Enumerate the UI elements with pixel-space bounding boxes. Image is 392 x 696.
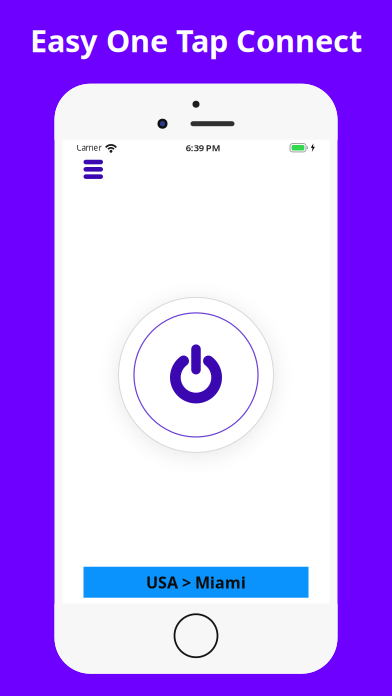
button[interactable]: USA > Miami [83,567,308,598]
staticText: Carrier [76,142,101,153]
staticText: Easy One Tap Connect [30,20,362,61]
button[interactable]: Menu [74,156,112,185]
button[interactable]: Connect [111,290,281,460]
button[interactable]: Home [169,609,222,662]
staticText: 6:39 PM [186,141,221,154]
staticText: USA > Miami [146,572,246,593]
